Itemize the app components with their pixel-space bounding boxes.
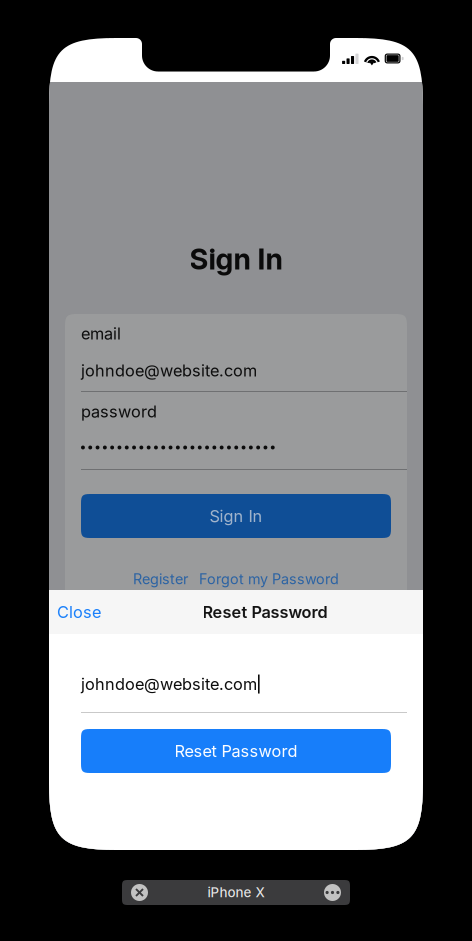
staticText: Sign In: [189, 242, 282, 276]
button[interactable]: Forgot my Password: [199, 570, 339, 588]
button[interactable]: More options: [324, 884, 341, 901]
staticText: email: [81, 324, 121, 343]
button[interactable]: Close: [57, 590, 121, 634]
staticText: Sign In: [209, 506, 262, 526]
button[interactable]: Sign In: [81, 494, 391, 538]
staticText: iPhone X: [207, 884, 264, 900]
staticText: Reset Password: [202, 602, 327, 622]
staticText: Forgot my Password: [199, 570, 339, 588]
staticText: johndoe@website.com: [81, 361, 257, 380]
button[interactable]: Register: [133, 570, 188, 588]
staticText: Reset Password: [174, 741, 297, 761]
staticText: password: [81, 402, 157, 421]
staticText: Close: [57, 602, 101, 622]
staticText: johndoe@website.com: [81, 674, 257, 694]
staticText: Register: [133, 570, 188, 588]
button[interactable]: Reset Password: [81, 729, 391, 773]
button[interactable]: Close simulator: [131, 884, 148, 901]
